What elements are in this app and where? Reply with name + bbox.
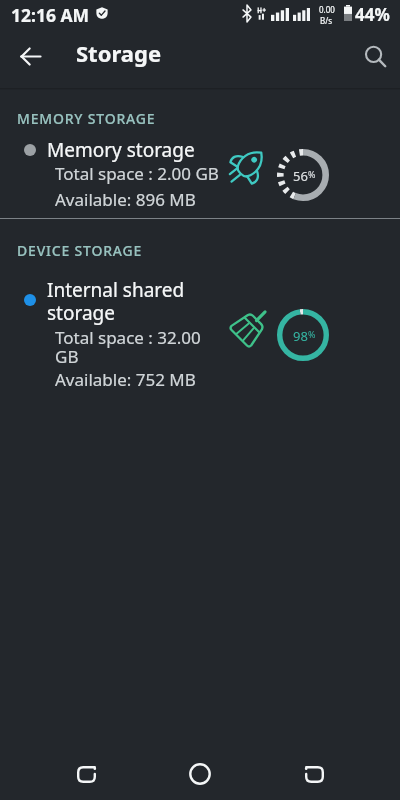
- staticText: MEMORY STORAGE: [17, 109, 156, 128]
- button[interactable]: Home: [176, 750, 224, 798]
- staticText: Available: 896 MB: [55, 188, 196, 211]
- staticText: Total space : 32.00 GB: [55, 326, 223, 368]
- staticText: 98: [293, 327, 308, 345]
- staticText: %: [308, 168, 316, 180]
- staticText: Available: 752 MB: [55, 368, 196, 391]
- staticText: %: [308, 328, 316, 340]
- button[interactable]: Back: [6, 32, 54, 80]
- staticText: Storage: [76, 38, 162, 68]
- button[interactable]: Internal shared storage: [0, 266, 400, 394]
- staticText: Total space : 2.00 GB: [55, 162, 223, 185]
- staticText: B/s: [320, 15, 333, 26]
- staticText: 44%: [355, 3, 390, 26]
- button[interactable]: Search: [352, 33, 400, 81]
- staticText: DEVICE STORAGE: [17, 241, 143, 260]
- staticText: 0.00: [319, 4, 335, 15]
- button[interactable]: Recents: [290, 750, 338, 798]
- staticText: Internal shared storage: [47, 277, 223, 326]
- button[interactable]: Memory storage: [0, 130, 400, 216]
- button[interactable]: Back: [62, 750, 110, 798]
- staticText: 56: [293, 167, 308, 185]
- staticText: 12:16 AM: [11, 3, 90, 27]
- staticText: Memory storage: [47, 137, 195, 163]
